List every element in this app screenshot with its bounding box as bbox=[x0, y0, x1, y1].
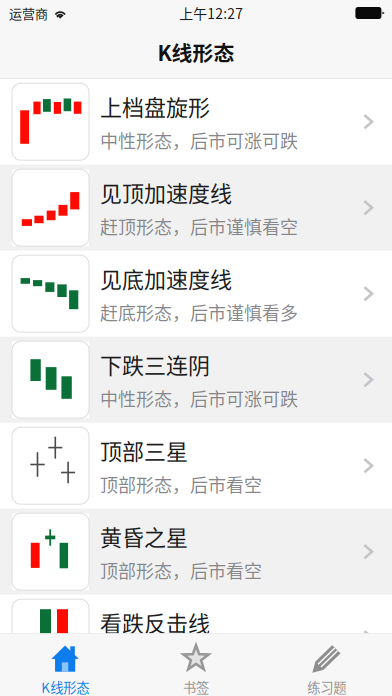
staticText: 练习题 bbox=[307, 677, 346, 696]
button[interactable]: K线形态 bbox=[0, 634, 131, 696]
staticText: K线形态 bbox=[157, 37, 234, 67]
staticText: 书签 bbox=[183, 677, 209, 696]
staticText: 黄昏之星 bbox=[100, 520, 188, 552]
staticText: 下跌三连阴 bbox=[100, 348, 210, 380]
staticText: 看跌反击线 bbox=[100, 606, 210, 638]
button[interactable]: 上档盘旋形 bbox=[0, 79, 392, 165]
staticText: 中性形态，后市可涨可跌 bbox=[100, 385, 298, 411]
staticText: 上午12:27 bbox=[179, 3, 243, 23]
staticText: 中性形态，后市可涨可跌 bbox=[100, 127, 298, 153]
button[interactable]: 顶部三星 bbox=[0, 423, 392, 509]
button[interactable]: 下跌三连阴 bbox=[0, 337, 392, 423]
staticText: 顶部三星 bbox=[100, 434, 188, 466]
button[interactable]: 练习题 bbox=[261, 634, 392, 696]
staticText: 顶部形态，后市看空 bbox=[100, 471, 262, 497]
staticText: 见底加速度线 bbox=[100, 262, 232, 294]
staticText: K线形态 bbox=[41, 677, 89, 696]
button[interactable]: 看跌反击线 bbox=[0, 595, 392, 681]
staticText: 赶底形态，后市谨慎看多 bbox=[100, 299, 298, 325]
staticText: 赶顶形态，后市谨慎看空 bbox=[100, 213, 298, 239]
button[interactable]: 见底加速度线 bbox=[0, 251, 392, 337]
staticText: 运营商 bbox=[9, 3, 48, 22]
staticText: 上档盘旋形 bbox=[100, 90, 210, 122]
button[interactable]: 书签 bbox=[131, 634, 261, 696]
staticText: 见顶加速度线 bbox=[100, 176, 232, 208]
button[interactable]: 黄昏之星 bbox=[0, 509, 392, 595]
staticText: 底部形态，后市看多 bbox=[100, 643, 262, 669]
staticText: 顶部形态，后市看空 bbox=[100, 557, 262, 583]
button[interactable]: 见顶加速度线 bbox=[0, 165, 392, 251]
